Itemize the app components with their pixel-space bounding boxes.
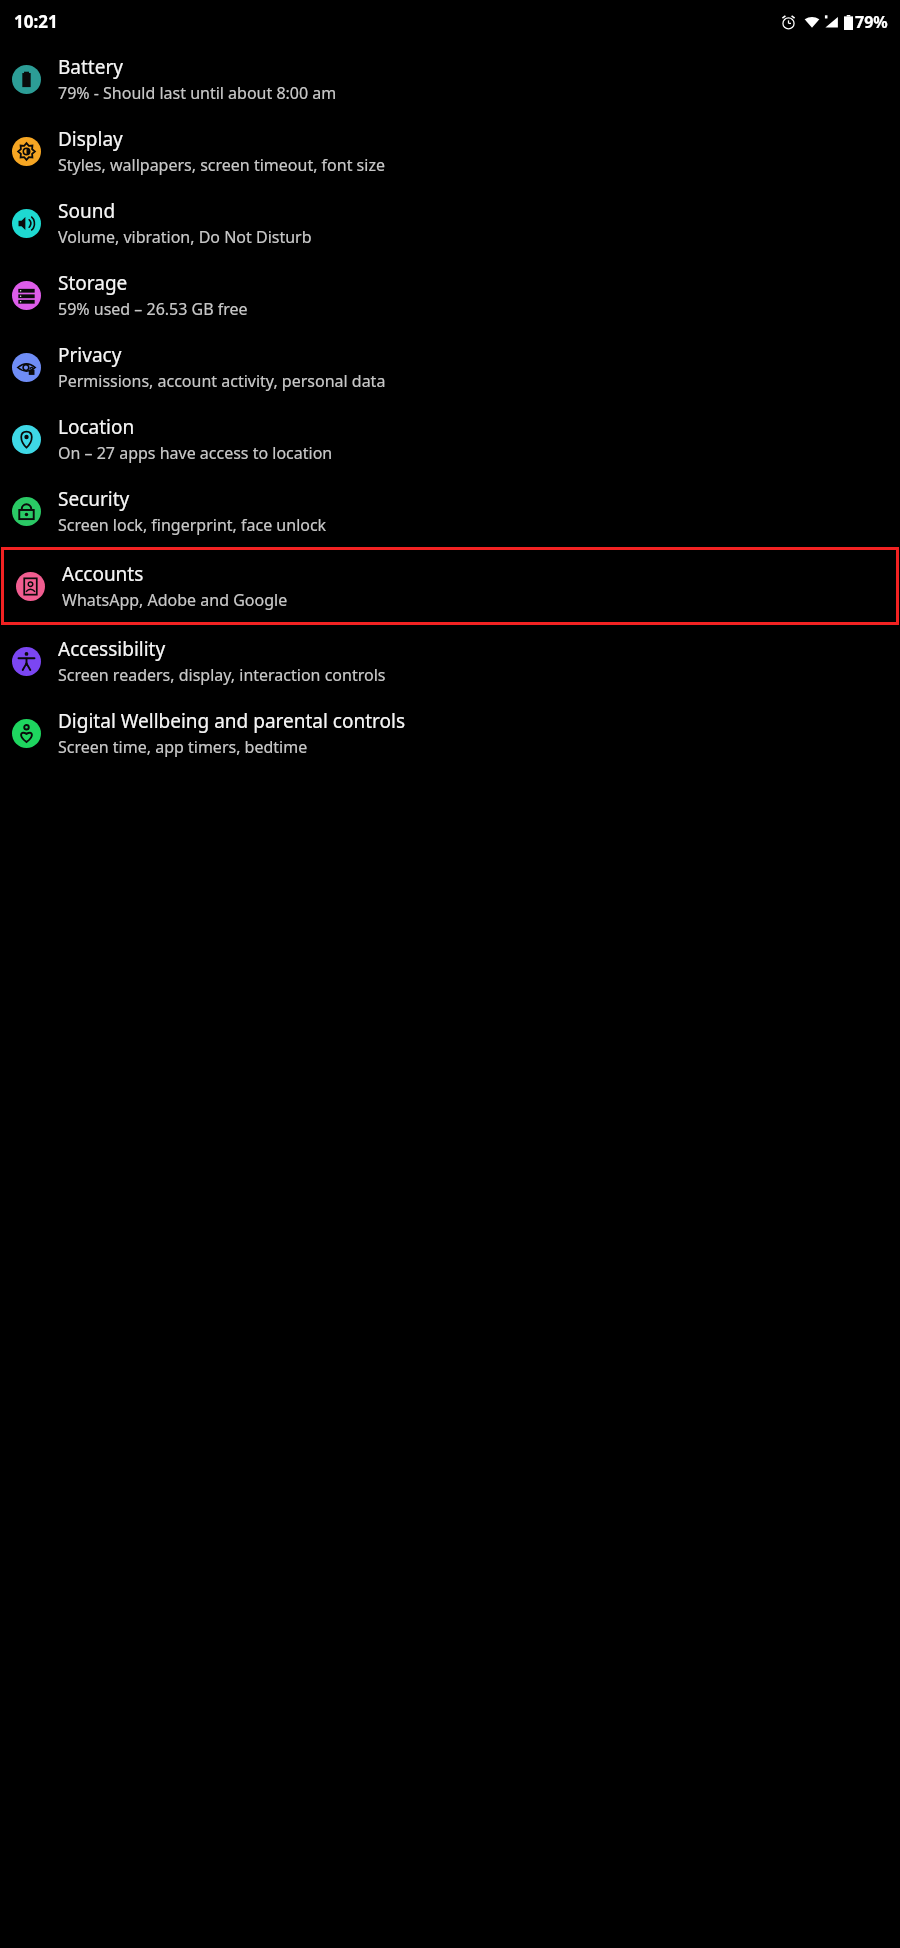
staticText: Volume, vibration, Do Not Disturb	[58, 226, 312, 248]
staticText: Security	[58, 486, 130, 512]
button[interactable]: Privacy	[0, 331, 900, 403]
staticText: Location	[58, 414, 135, 440]
button[interactable]: Display	[0, 115, 900, 187]
staticText: Styles, wallpapers, screen timeout, font…	[58, 154, 385, 176]
button[interactable]: Location	[0, 403, 900, 475]
staticText: Digital Wellbeing and parental controls	[58, 708, 406, 734]
staticText: Privacy	[58, 342, 122, 368]
staticText: 59% used – 26.53 GB free	[58, 298, 248, 320]
staticText: Screen time, app timers, bedtime	[58, 736, 308, 758]
button[interactable]: Storage	[0, 259, 900, 331]
staticText: 79% - Should last until about 8:00 am	[58, 82, 337, 104]
staticText: Screen lock, fingerprint, face unlock	[58, 514, 327, 536]
staticText: Screen readers, display, interaction con…	[58, 664, 386, 686]
button[interactable]: Accessibility	[0, 625, 900, 697]
staticText: 79%	[855, 11, 888, 33]
staticText: Accounts	[62, 561, 144, 587]
button[interactable]: Accounts	[4, 550, 896, 622]
staticText: Display	[58, 126, 123, 152]
button[interactable]: Sound	[0, 187, 900, 259]
staticText: 10:21	[14, 10, 58, 33]
staticText: Battery	[58, 54, 123, 80]
button[interactable]: Battery	[0, 43, 900, 115]
staticText: Permissions, account activity, personal …	[58, 370, 386, 392]
staticText: Accessibility	[58, 636, 166, 662]
staticText: On – 27 apps have access to location	[58, 442, 333, 464]
button[interactable]: Security	[0, 475, 900, 547]
staticText: WhatsApp, Adobe and Google	[62, 589, 288, 611]
staticText: Sound	[58, 198, 116, 224]
staticText: Storage	[58, 270, 128, 296]
button[interactable]: Digital Wellbeing and parental controls	[0, 697, 900, 769]
